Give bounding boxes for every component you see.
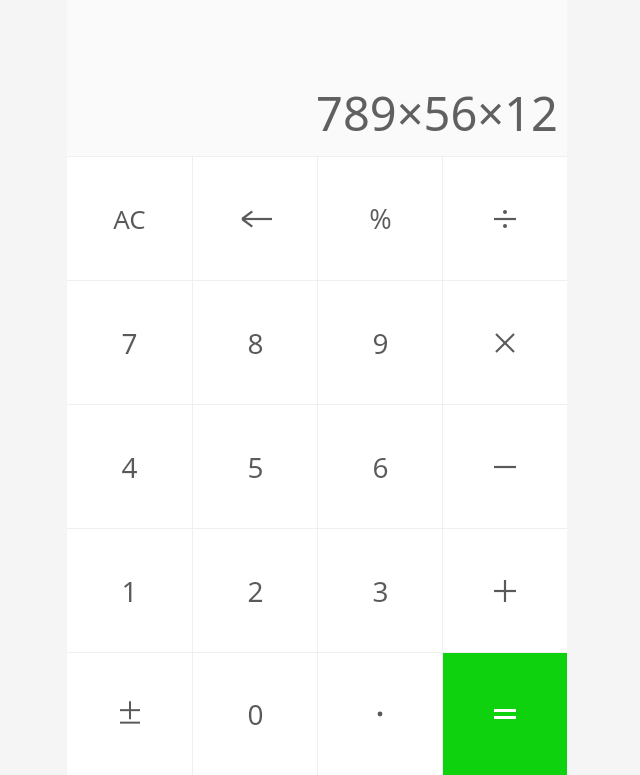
staticText: 0 — [247, 695, 264, 733]
button[interactable]: Backspace — [193, 157, 317, 280]
button[interactable]: Divide — [443, 157, 567, 280]
staticText: 9 — [372, 324, 389, 362]
button[interactable]: Toggle sign — [67, 653, 192, 775]
button[interactable]: 8 — [193, 281, 317, 404]
button[interactable]: 5 — [193, 405, 317, 528]
staticText: 8 — [247, 324, 264, 362]
button[interactable]: Equals — [443, 653, 567, 775]
button[interactable]: AC — [67, 157, 192, 280]
button[interactable]: Plus — [443, 529, 567, 652]
staticText: 2 — [247, 572, 264, 610]
staticText: 789×56×12 — [316, 81, 558, 145]
staticText: 3 — [372, 572, 389, 610]
staticText: 1 — [121, 572, 138, 610]
button[interactable]: 1 — [67, 529, 192, 652]
staticText: 6 — [372, 448, 389, 486]
button[interactable]: Minus — [443, 405, 567, 528]
button[interactable]: Multiply — [443, 281, 567, 404]
button[interactable]: 7 — [67, 281, 192, 404]
button[interactable]: 6 — [318, 405, 442, 528]
button[interactable]: 2 — [193, 529, 317, 652]
staticText: 4 — [121, 448, 138, 486]
button[interactable]: Decimal point — [318, 653, 442, 775]
button[interactable]: 9 — [318, 281, 442, 404]
button[interactable]: % — [318, 157, 442, 280]
staticText: AC — [113, 201, 146, 236]
staticText: 5 — [247, 448, 264, 486]
button[interactable]: 4 — [67, 405, 192, 528]
button[interactable]: 0 — [193, 653, 317, 775]
button[interactable]: 3 — [318, 529, 442, 652]
staticText: 7 — [121, 324, 138, 362]
staticText: % — [369, 200, 392, 237]
